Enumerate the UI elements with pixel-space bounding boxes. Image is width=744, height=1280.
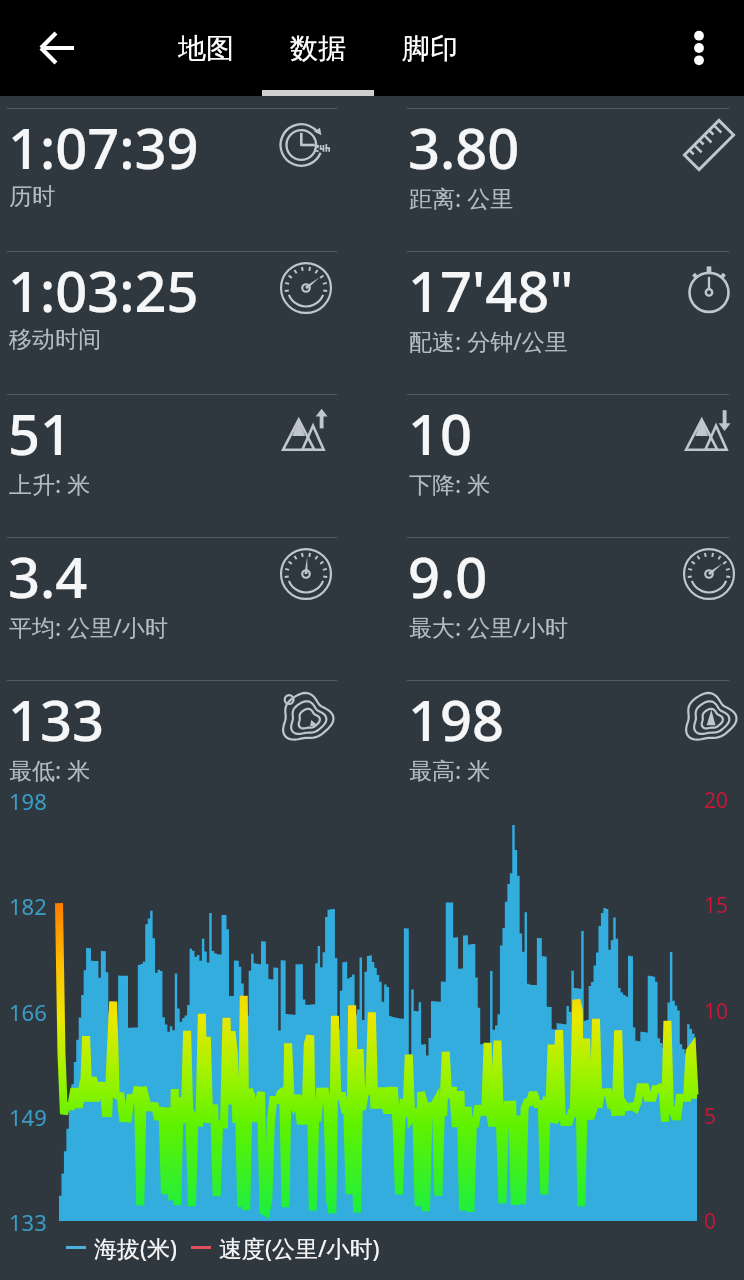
button[interactable]: Back bbox=[28, 19, 86, 77]
staticText: 平均: 公里/小时 bbox=[9, 611, 168, 642]
staticText: 速度(公里/小时) bbox=[219, 1232, 380, 1263]
staticText: 1:03:25 bbox=[8, 252, 199, 328]
staticText: 脚印 bbox=[402, 31, 458, 66]
staticText: 166 bbox=[9, 997, 47, 1027]
staticText: 198 bbox=[408, 681, 505, 757]
button[interactable]: 17'48" bbox=[407, 251, 729, 394]
staticText: 20 bbox=[704, 786, 729, 815]
button[interactable]: 3.4 bbox=[7, 537, 337, 680]
staticText: 51 bbox=[8, 395, 73, 471]
staticText: 182 bbox=[9, 891, 47, 921]
button[interactable]: 133 bbox=[7, 680, 337, 785]
staticText: 最低: 米 bbox=[9, 754, 91, 785]
staticText: 10 bbox=[408, 395, 473, 471]
staticText: 133 bbox=[8, 681, 105, 757]
staticText: 最高: 米 bbox=[409, 754, 491, 785]
staticText: 3.80 bbox=[408, 109, 520, 185]
staticText: 3.4 bbox=[8, 538, 88, 614]
button[interactable]: 1:03:25 bbox=[7, 251, 337, 394]
staticText: 地图 bbox=[178, 31, 234, 66]
staticText: 17'48" bbox=[408, 252, 574, 328]
staticText: 配速: 分钟/公里 bbox=[409, 325, 568, 356]
button[interactable]: 198 bbox=[407, 680, 729, 785]
staticText: 0 bbox=[704, 1207, 717, 1236]
staticText: 133 bbox=[9, 1207, 47, 1237]
button[interactable]: 10 bbox=[407, 394, 729, 537]
button[interactable]: 9.0 bbox=[407, 537, 729, 680]
button[interactable]: 51 bbox=[7, 394, 337, 537]
staticText: 15 bbox=[704, 891, 729, 920]
staticText: 1:07:39 bbox=[8, 109, 199, 185]
button[interactable]: 脚印 bbox=[374, 0, 486, 96]
button[interactable]: More options bbox=[670, 19, 728, 77]
staticText: 最大: 公里/小时 bbox=[409, 611, 568, 642]
staticText: 移动时间 bbox=[9, 325, 101, 354]
staticText: 历时 bbox=[9, 182, 55, 211]
button[interactable]: 数据 bbox=[262, 0, 374, 96]
staticText: 数据 bbox=[290, 31, 346, 66]
staticText: 下降: 米 bbox=[409, 468, 491, 499]
staticText: 198 bbox=[9, 786, 47, 816]
staticText: 海拔(米) bbox=[94, 1232, 177, 1263]
button[interactable]: 地图 bbox=[150, 0, 262, 96]
staticText: 10 bbox=[704, 997, 729, 1026]
staticText: 149 bbox=[9, 1102, 47, 1132]
staticText: 上升: 米 bbox=[9, 468, 91, 499]
staticText: 9.0 bbox=[408, 538, 488, 614]
button[interactable]: 1:07:39 bbox=[7, 108, 337, 251]
button[interactable]: 3.80 bbox=[407, 108, 729, 251]
staticText: 距离: 公里 bbox=[409, 182, 514, 213]
staticText: 5 bbox=[704, 1102, 717, 1131]
